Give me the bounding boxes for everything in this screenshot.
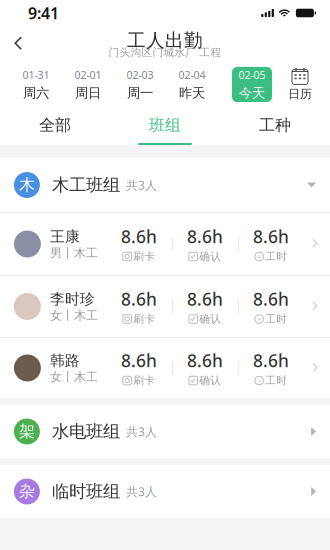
staticText: 共3人 xyxy=(126,423,157,439)
staticText: 昨天 xyxy=(179,85,205,101)
staticText: 工人出勤 xyxy=(127,29,203,52)
staticText: 刷卡 xyxy=(133,250,155,263)
staticText: 8.6h xyxy=(121,349,157,372)
staticText: 周六 xyxy=(23,85,49,101)
staticText: 共3人 xyxy=(126,483,157,499)
staticText: 王康 xyxy=(50,228,80,246)
staticText: 确认 xyxy=(199,250,221,263)
staticText: 共3人 xyxy=(126,177,157,193)
staticText: 临时班组 xyxy=(52,481,120,502)
button[interactable]: 李时珍 xyxy=(0,276,330,337)
button[interactable]: 韩路 xyxy=(0,338,330,398)
staticText: 工时 xyxy=(265,374,287,387)
staticText: 8.6h xyxy=(187,349,223,372)
button[interactable]: 02-03 xyxy=(120,67,160,102)
button[interactable]: 木 xyxy=(0,158,330,212)
button[interactable]: 01-31 xyxy=(16,67,56,102)
button[interactable]: Back xyxy=(4,29,34,59)
staticText: 男丨木工 xyxy=(50,246,98,260)
staticText: 刷卡 xyxy=(133,374,155,387)
staticText: 8.6h xyxy=(187,225,223,248)
staticText: 工种 xyxy=(259,115,291,135)
staticText: 架 xyxy=(19,422,35,441)
button[interactable]: 02-05 xyxy=(232,67,272,102)
staticText: 01-31 xyxy=(22,68,49,82)
staticText: 02-03 xyxy=(126,68,153,82)
staticText: 木 xyxy=(19,175,35,195)
staticText: 杂 xyxy=(19,482,35,501)
staticText: 水电班组 xyxy=(52,421,120,442)
button[interactable]: 班组 xyxy=(110,107,220,145)
staticText: 确认 xyxy=(199,312,221,326)
button[interactable]: 02-04 xyxy=(172,67,212,102)
staticText: 02-05 xyxy=(238,68,265,82)
button[interactable]: 02-01 xyxy=(68,67,108,102)
staticText: 8.6h xyxy=(187,287,223,310)
staticText: 8.6h xyxy=(121,225,157,248)
staticText: 8.6h xyxy=(253,349,289,372)
staticText: 日历 xyxy=(288,87,312,101)
staticText: 确认 xyxy=(199,374,221,387)
staticText: 8.6h xyxy=(253,287,289,310)
staticText: 班组 xyxy=(149,115,181,135)
staticText: 韩路 xyxy=(50,352,80,370)
staticText: 木工班组 xyxy=(52,174,120,196)
staticText: 02-04 xyxy=(178,68,205,82)
staticText: 周一 xyxy=(127,85,153,101)
staticText: 工时 xyxy=(265,312,287,326)
staticText: 02-01 xyxy=(74,68,101,82)
button[interactable]: 王康 xyxy=(0,213,330,275)
button[interactable]: 工种 xyxy=(220,107,330,145)
button[interactable]: 架 xyxy=(0,405,330,458)
staticText: 工时 xyxy=(265,250,287,263)
staticText: 周日 xyxy=(75,85,101,101)
staticText: 今天 xyxy=(239,85,265,101)
staticText: 8.6h xyxy=(121,287,157,310)
staticText: 女丨木工 xyxy=(50,370,98,384)
staticText: 李时珍 xyxy=(50,290,95,308)
staticText: 刷卡 xyxy=(133,312,155,326)
staticText: 全部 xyxy=(39,115,71,135)
staticText: 8.6h xyxy=(253,225,289,248)
button[interactable]: 全部 xyxy=(0,107,110,145)
staticText: 门头沟区门城水厂 工程 xyxy=(108,46,221,59)
button[interactable]: 日历 xyxy=(282,67,318,101)
staticText: 女丨木工 xyxy=(50,308,98,323)
staticText: 9:41 xyxy=(28,2,59,24)
button[interactable]: 杂 xyxy=(0,465,330,518)
